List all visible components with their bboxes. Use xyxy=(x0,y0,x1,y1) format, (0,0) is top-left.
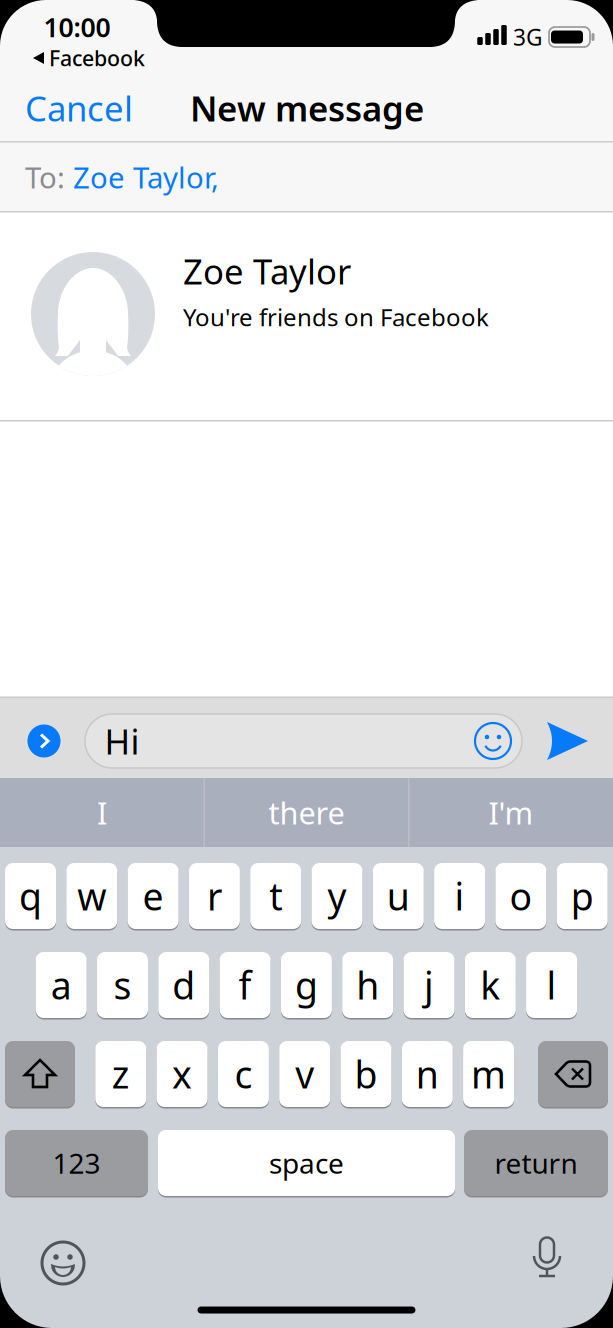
staticText: t xyxy=(269,871,282,921)
staticText: s xyxy=(113,960,131,1010)
button[interactable]: x xyxy=(157,1041,208,1107)
button[interactable]: t xyxy=(250,863,301,929)
staticText: g xyxy=(295,960,318,1010)
button[interactable]: Emoji picker xyxy=(471,719,515,763)
button[interactable]: h xyxy=(342,952,393,1018)
staticText: return xyxy=(494,1144,577,1182)
button[interactable]: w xyxy=(66,863,117,929)
staticText: w xyxy=(77,871,106,921)
button[interactable]: return xyxy=(464,1130,608,1196)
button[interactable]: I'm xyxy=(411,778,611,847)
button[interactable]: Dictation xyxy=(525,1238,569,1282)
button[interactable]: To: xyxy=(0,142,613,212)
button[interactable]: r xyxy=(189,863,240,929)
staticText: I'm xyxy=(488,792,533,833)
button[interactable]: q xyxy=(5,863,56,929)
button[interactable]: v xyxy=(279,1041,330,1107)
button[interactable]: e xyxy=(128,863,179,929)
staticText: q xyxy=(19,871,42,921)
button[interactable]: Delete xyxy=(538,1041,608,1107)
staticText: h xyxy=(356,960,379,1010)
staticText: Facebook xyxy=(49,44,145,72)
staticText: New message xyxy=(190,85,424,131)
button[interactable]: Hi xyxy=(85,714,522,768)
staticText: r xyxy=(207,871,222,921)
button[interactable]: Shift xyxy=(5,1041,75,1107)
staticText: 123 xyxy=(52,1144,100,1182)
staticText: y xyxy=(327,871,346,921)
button[interactable]: Cancel xyxy=(25,86,185,130)
staticText: u xyxy=(387,871,410,921)
button[interactable]: d xyxy=(158,952,209,1018)
staticText: m xyxy=(471,1049,506,1099)
staticText: k xyxy=(480,960,500,1010)
staticText: e xyxy=(143,871,164,921)
button[interactable]: I xyxy=(2,778,202,847)
staticText: d xyxy=(172,960,195,1010)
staticText: p xyxy=(571,871,594,921)
button[interactable]: z xyxy=(95,1041,146,1107)
staticText: Zoe Taylor, xyxy=(73,157,219,196)
button[interactable]: j xyxy=(403,952,454,1018)
staticText: i xyxy=(455,871,465,921)
button[interactable]: l xyxy=(526,952,577,1018)
staticText: o xyxy=(509,871,532,921)
staticText: Cancel xyxy=(25,85,133,131)
button[interactable]: u xyxy=(373,863,424,929)
staticText: there xyxy=(268,792,344,833)
button[interactable]: 123 xyxy=(5,1130,148,1196)
button[interactable]: Send xyxy=(545,721,589,761)
button[interactable]: i xyxy=(434,863,485,929)
button[interactable]: space xyxy=(158,1130,455,1196)
staticText: n xyxy=(416,1049,439,1099)
button[interactable]: p xyxy=(557,863,608,929)
button[interactable]: n xyxy=(402,1041,453,1107)
button[interactable]: b xyxy=(340,1041,391,1107)
staticText: space xyxy=(269,1144,344,1182)
staticText: l xyxy=(547,960,557,1010)
button[interactable]: c xyxy=(218,1041,269,1107)
staticText: j xyxy=(424,960,434,1010)
staticText: v xyxy=(295,1049,314,1099)
button[interactable]: Emoji xyxy=(41,1241,85,1285)
staticText: a xyxy=(51,960,72,1010)
button[interactable]: f xyxy=(220,952,271,1018)
staticText: c xyxy=(234,1049,252,1099)
button[interactable]: m xyxy=(463,1041,514,1107)
staticText: z xyxy=(112,1049,130,1099)
button[interactable]: Zoe Taylor xyxy=(0,212,613,420)
staticText: I xyxy=(97,792,107,833)
button[interactable]: o xyxy=(495,863,546,929)
staticText: Zoe Taylor xyxy=(183,248,351,294)
staticText: Hi xyxy=(104,718,139,764)
staticText: 10:00 xyxy=(43,9,110,45)
button[interactable]: k xyxy=(465,952,516,1018)
staticText: b xyxy=(354,1049,377,1099)
button[interactable]: y xyxy=(311,863,362,929)
button[interactable]: there xyxy=(206,778,406,847)
staticText: To: xyxy=(25,157,65,196)
staticText: You're friends on Facebook xyxy=(183,301,489,333)
staticText: x xyxy=(172,1049,192,1099)
button[interactable]: a xyxy=(36,952,87,1018)
staticText: f xyxy=(239,960,252,1010)
button[interactable]: g xyxy=(281,952,332,1018)
staticText: 3G xyxy=(513,22,543,52)
button[interactable]: s xyxy=(97,952,148,1018)
button[interactable]: More options xyxy=(27,724,60,757)
